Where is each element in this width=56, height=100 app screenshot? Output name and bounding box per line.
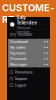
staticText: My Tellerdee — [10, 32, 32, 37]
button[interactable]: My orders — [8, 44, 50, 50]
staticText: My orders — [10, 45, 26, 50]
button[interactable]: Logout — [7, 82, 50, 88]
staticText: CUSTOMERZ — [2, 2, 54, 25]
staticText: Discounts — [10, 57, 27, 61]
button[interactable]: Support — [7, 75, 50, 82]
staticText: Support — [15, 76, 27, 81]
staticText: Promotions — [15, 70, 33, 74]
button[interactable]: Dashboard — [8, 39, 50, 44]
staticText: Logout — [15, 83, 26, 87]
staticText: Dashboard — [10, 39, 28, 44]
staticText: Payments — [10, 51, 26, 55]
staticText: Sally Tellerdee — [16, 15, 37, 25]
button[interactable]: Promotions — [7, 69, 50, 75]
button[interactable]: Sally Tellerdee — [7, 20, 50, 29]
staticText: Premium member — [16, 26, 30, 34]
staticText: your best website — [9, 25, 47, 31]
button[interactable]: Messages — [8, 62, 50, 67]
button[interactable]: Discounts — [8, 56, 50, 62]
button[interactable]: Payments — [8, 50, 50, 56]
staticText: Messages — [10, 62, 27, 67]
